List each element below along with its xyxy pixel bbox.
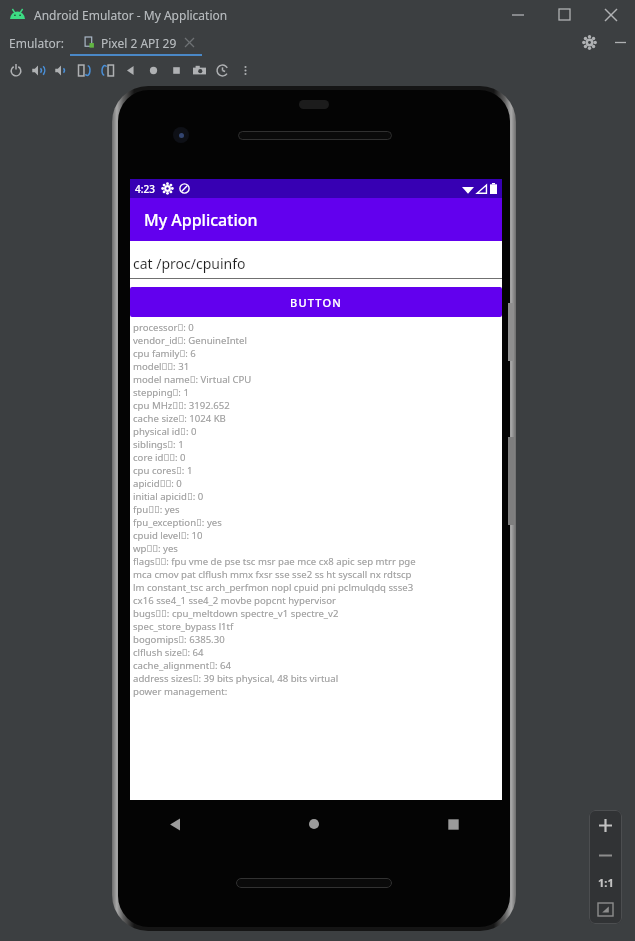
staticText: processor : 0 [133, 321, 194, 334]
staticText: mca cmov pat clflush mmx fxsr sse sse2 s… [133, 568, 412, 581]
staticText: fpu : yes [133, 503, 180, 516]
button[interactable]: Zoom in [589, 810, 622, 841]
staticText: clflush size : 64 [133, 646, 204, 659]
button[interactable]: Take screenshot [188, 56, 211, 84]
staticText: address sizes : 39 bits physical, 48 bit… [133, 672, 339, 685]
button[interactable]: BUTTON [130, 287, 502, 317]
button[interactable]: Close [587, 0, 635, 29]
staticText: 1:1 [598, 875, 614, 890]
button[interactable]: Overview [165, 56, 188, 84]
staticText: lm constant_tsc arch_perfmon nopl cpuid … [133, 581, 414, 594]
staticText: fpu_exception : yes [133, 516, 222, 529]
button[interactable]: Power [4, 56, 27, 84]
staticText: core id : 0 [133, 451, 186, 464]
button[interactable]: Pixel 2 API 29 [84, 29, 202, 56]
button[interactable]: Zoom out [589, 841, 622, 869]
button[interactable]: Emulator settings [573, 29, 605, 56]
staticText: My Application [144, 209, 258, 231]
staticText: bugs : cpu_meltdown spectre_v1 spectre_v… [133, 607, 339, 620]
button[interactable]: Actual size [589, 869, 622, 895]
staticText: cache_alignment : 64 [133, 659, 231, 672]
button[interactable]: Home [142, 56, 165, 84]
button[interactable]: Fit to window [589, 895, 622, 924]
staticText: physical id : 0 [133, 425, 197, 438]
staticText: Pixel 2 API 29 [101, 35, 177, 51]
button[interactable]: My Application [130, 198, 502, 241]
staticText: BUTTON [290, 295, 343, 310]
button[interactable]: cat /proc/cpuinfo [130, 241, 502, 279]
button[interactable]: Recent apps [430, 801, 476, 847]
button[interactable]: Home [291, 801, 337, 847]
staticText: Android Emulator - My Application [34, 7, 228, 23]
staticText: Emulator: [9, 35, 64, 51]
button[interactable]: Volume down [50, 56, 73, 84]
staticText: wp : yes [133, 542, 178, 555]
button[interactable]: Back [119, 56, 142, 84]
staticText: cx16 sse4_1 sse4_2 movbe popcnt hypervis… [133, 594, 336, 607]
staticText: cat /proc/cpuinfo [133, 254, 246, 273]
button[interactable]: Minimize [495, 0, 541, 29]
staticText: cpu MHz : 3192.652 [133, 399, 230, 412]
staticText: model : 31 [133, 360, 190, 373]
staticText: 4:23 [135, 182, 155, 196]
staticText: power management: [133, 685, 228, 698]
staticText: spec_store_bypass l1tf [133, 620, 234, 633]
staticText: flags : fpu vme de pse tsc msr pae mce c… [133, 555, 416, 568]
staticText: cache size : 1024 KB [133, 412, 226, 425]
staticText: model name : Virtual CPU [133, 373, 252, 386]
staticText: cpu family : 6 [133, 347, 196, 360]
staticText: siblings : 1 [133, 438, 184, 451]
button[interactable]: Hide panel [605, 29, 635, 56]
button[interactable]: Back [152, 801, 198, 847]
button[interactable]: Volume up [27, 56, 50, 84]
staticText: vendor_id : GenuineIntel [133, 334, 247, 347]
staticText: apicid : 0 [133, 477, 182, 490]
staticText: bogomips : 6385.30 [133, 633, 225, 646]
button[interactable]: Rotate left [73, 56, 96, 84]
button[interactable]: More options [234, 56, 257, 84]
staticText: initial apicid : 0 [133, 490, 204, 503]
staticText: stepping : 1 [133, 386, 189, 399]
staticText: cpu cores : 1 [133, 464, 193, 477]
button[interactable]: Rotate right [96, 56, 119, 84]
staticText: cpuid level : 10 [133, 529, 203, 542]
button[interactable]: Maximize [541, 0, 587, 29]
button[interactable]: History [211, 56, 234, 84]
